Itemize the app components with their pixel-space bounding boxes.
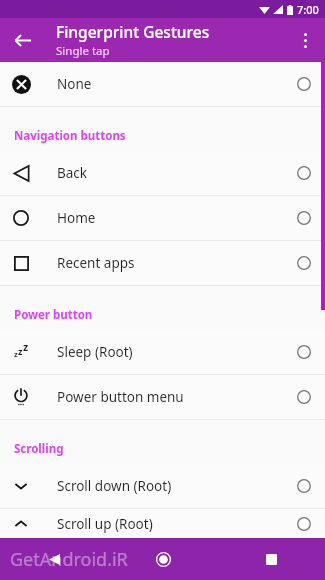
button[interactable]: Home: [109, 538, 217, 580]
button[interactable]: Scroll up (Root): [0, 509, 325, 538]
staticText: Sleep (Root): [57, 343, 133, 361]
staticText: Scrolling: [14, 441, 64, 457]
staticText: Scroll up (Root): [57, 515, 153, 533]
staticText: Back: [57, 164, 88, 182]
button[interactable]: Recent apps: [217, 538, 325, 580]
button[interactable]: Back: [4, 22, 40, 58]
staticText: Scroll down (Root): [57, 477, 172, 495]
staticText: Single tap: [56, 43, 110, 59]
staticText: 7:00: [297, 2, 319, 17]
staticText: Navigation buttons: [14, 128, 126, 144]
staticText: z: [14, 349, 18, 359]
staticText: Power button menu: [57, 388, 184, 406]
button[interactable]: Recent apps: [0, 241, 325, 285]
button[interactable]: None: [0, 62, 325, 106]
button[interactable]: Back: [0, 538, 109, 580]
staticText: Fingerprint Gestures: [56, 21, 210, 42]
staticText: z: [18, 345, 23, 357]
staticText: None: [57, 75, 92, 93]
button[interactable]: Back: [0, 151, 325, 195]
button[interactable]: Power button menu: [0, 375, 325, 419]
staticText: Recent apps: [57, 254, 135, 272]
button[interactable]: Home: [0, 196, 325, 240]
button[interactable]: More options: [288, 23, 322, 57]
button[interactable]: z: [0, 330, 325, 374]
staticText: GetAndroid.iR: [10, 547, 128, 572]
staticText: z: [23, 340, 29, 354]
staticText: Home: [57, 209, 96, 227]
staticText: Power button: [14, 307, 93, 323]
button[interactable]: Scroll down (Root): [0, 464, 325, 508]
